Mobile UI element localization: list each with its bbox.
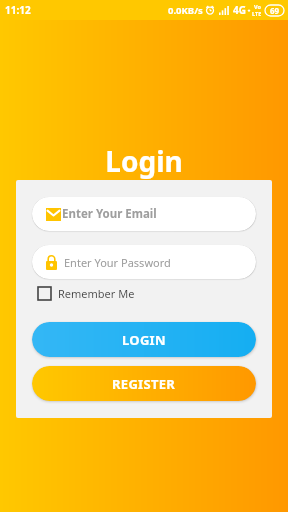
staticText: Login [0,142,288,180]
staticText: 69 [270,5,280,16]
staticText: 4G [233,3,246,17]
staticText: Enter Your Email [62,206,157,222]
button[interactable]: Enter Your Password [32,245,256,279]
button[interactable]: LOGIN [32,322,256,357]
staticText: 11:12 [5,3,31,17]
staticText: Enter Your Password [64,255,171,270]
button[interactable]: Remember Me checkbox [38,283,135,303]
staticText: Vo [254,3,261,10]
staticText: REGISTER [112,375,176,393]
staticText: LOGIN [122,331,166,349]
staticText: Remember Me [58,286,135,301]
button[interactable]: Enter Your Email [32,197,256,231]
staticText: LTE [252,10,262,17]
button[interactable]: REGISTER [32,366,256,401]
staticText: 0.0KB/s [168,4,203,17]
